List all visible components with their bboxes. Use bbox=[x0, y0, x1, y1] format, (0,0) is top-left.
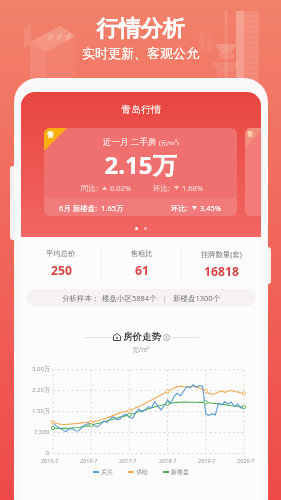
staticText: 关注 bbox=[101, 468, 113, 476]
button[interactable]: 平均总价 bbox=[21, 242, 101, 279]
button[interactable]: 关注 bbox=[93, 468, 113, 476]
staticText: 0.02% bbox=[110, 183, 132, 193]
staticText: 售 bbox=[47, 130, 54, 139]
staticText: 2016-7 bbox=[80, 457, 98, 464]
button[interactable]: 售租比 bbox=[102, 242, 181, 279]
staticText: 售 bbox=[247, 130, 253, 138]
staticText: 0 bbox=[46, 449, 50, 457]
staticText: 3.00万 bbox=[32, 365, 50, 373]
button[interactable]: 新楼盘 bbox=[163, 468, 189, 476]
staticText: 同比: bbox=[81, 183, 99, 193]
staticText: 2.25万 bbox=[32, 386, 50, 394]
button[interactable]: 分析样本： bbox=[26, 289, 256, 306]
staticText: 平均总价 bbox=[46, 249, 76, 258]
staticText: 房价走势 bbox=[123, 331, 161, 343]
button[interactable]: 供给 bbox=[128, 468, 148, 476]
button[interactable]: 售 bbox=[44, 128, 237, 216]
button[interactable]: 挂牌数量(套) bbox=[182, 242, 261, 280]
staticText: 250 bbox=[51, 262, 72, 279]
staticText: 2.15万 bbox=[44, 148, 237, 181]
staticText: 分析样本： bbox=[62, 293, 102, 303]
staticText: 16818 bbox=[204, 263, 239, 280]
staticText: 挂牌数量(套) bbox=[201, 249, 242, 259]
staticText: 61 bbox=[135, 262, 149, 279]
staticText: 2015-7 bbox=[41, 457, 59, 464]
other: Info bbox=[163, 334, 170, 341]
staticText: 元/m² bbox=[21, 345, 261, 354]
staticText: 供给 bbox=[136, 468, 148, 476]
staticText: 2018-7 bbox=[159, 457, 177, 464]
staticText: 售租比 bbox=[131, 249, 153, 258]
staticText: 3.45% bbox=[200, 203, 222, 213]
staticText: 近一月 二手房 bbox=[103, 136, 159, 148]
staticText: 行情分析 bbox=[0, 15, 281, 43]
staticText: 1.50万 bbox=[32, 407, 50, 415]
staticText: 青岛行情 bbox=[121, 103, 161, 116]
staticText: 环比: bbox=[171, 203, 189, 213]
staticText: 2020-7 bbox=[237, 457, 255, 464]
staticText: 新楼盘 bbox=[171, 468, 189, 476]
staticText: | bbox=[157, 293, 173, 303]
staticText: 2017-7 bbox=[119, 457, 137, 464]
staticText: 2019-7 bbox=[198, 457, 216, 464]
staticText: 实时更新、客观公允 bbox=[0, 45, 281, 61]
staticText: 6月 新楼盘: 1.65万 bbox=[59, 203, 124, 213]
staticText: 新楼盘1300个 bbox=[173, 293, 221, 303]
staticText: 环比: bbox=[153, 183, 171, 193]
staticText: 7,500 bbox=[34, 428, 50, 436]
staticText: (元/m²) bbox=[159, 139, 179, 147]
staticText: 楼盘小区5884个 bbox=[102, 293, 157, 303]
staticText: 1.68% bbox=[182, 183, 204, 193]
